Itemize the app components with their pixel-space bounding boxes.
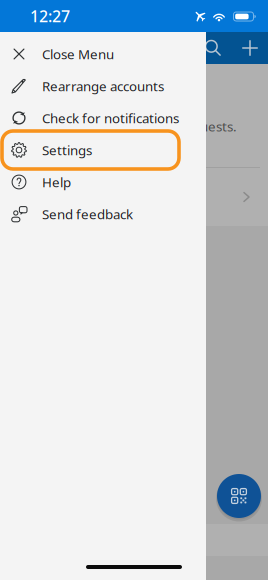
- button[interactable]: Send feedback: [0, 198, 206, 230]
- button[interactable]: Settings: [0, 134, 206, 166]
- staticText: Add your accounts to start: [28, 96, 190, 113]
- staticText: Add personal account: [16, 186, 182, 208]
- button[interactable]: Verified IDs: [0, 524, 268, 556]
- button[interactable]: Add personal account: [0, 168, 268, 226]
- staticText: Send feedback: [42, 205, 133, 223]
- staticText: Check for notifications: [42, 109, 179, 127]
- staticText: 12:27: [30, 5, 70, 27]
- button[interactable]: Add account: [232, 32, 268, 64]
- button[interactable]: Rearrange accounts: [0, 70, 206, 102]
- button[interactable]: Search: [194, 32, 232, 64]
- staticText: Rearrange accounts: [42, 77, 164, 95]
- button[interactable]: Close Menu: [0, 38, 206, 70]
- staticText: receiving authentication requests.: [28, 117, 237, 135]
- staticText: Help: [42, 173, 71, 191]
- staticText: Settings: [42, 141, 92, 159]
- button[interactable]: Check for notifications: [0, 102, 206, 134]
- staticText: Close Menu: [42, 45, 114, 63]
- button[interactable]: Help: [0, 166, 206, 198]
- button[interactable]: Scan a QR code: [213, 470, 265, 522]
